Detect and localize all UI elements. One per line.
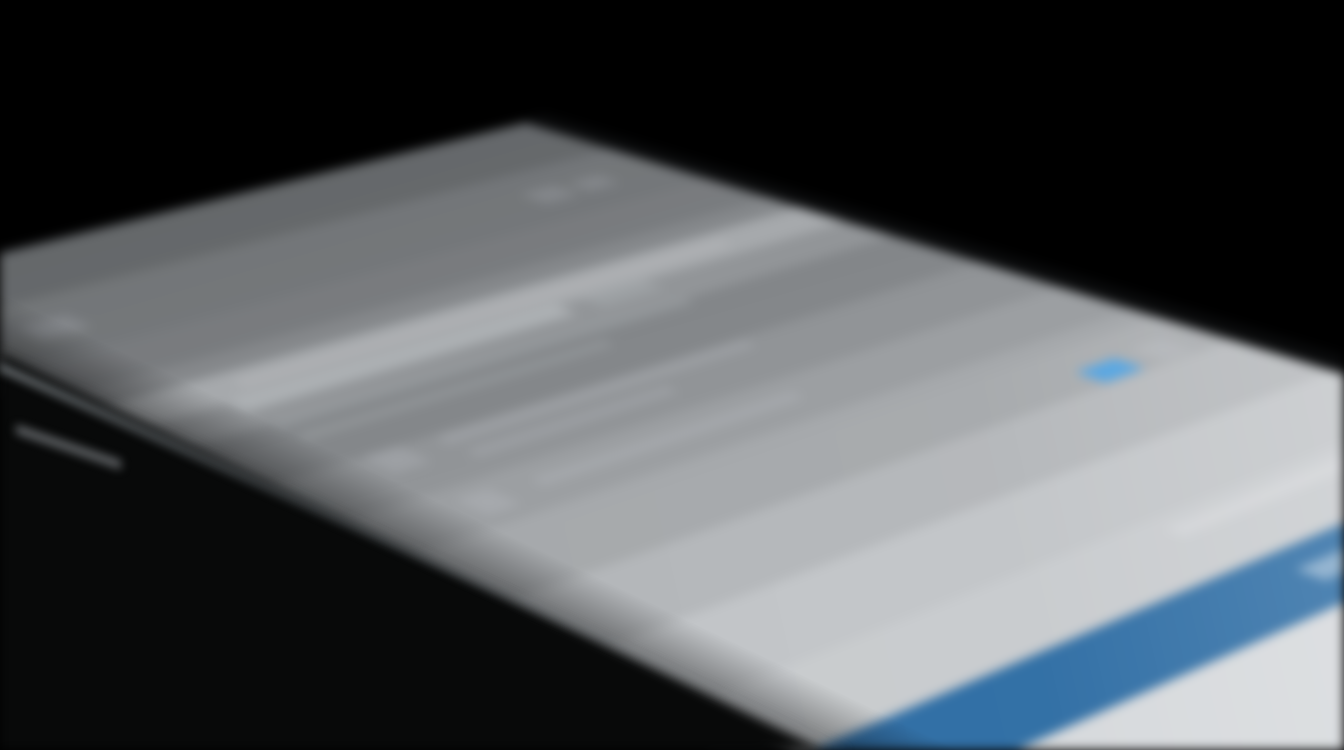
button[interactable]: New: [1012, 330, 1230, 405]
button[interactable]: Update Available: [194, 232, 890, 451]
button[interactable]: Download size: [410, 305, 1100, 543]
button[interactable]: Update now: [841, 447, 1344, 750]
button[interactable]: Release notes: [324, 276, 1003, 500]
button[interactable]: Back: [49, 187, 771, 399]
